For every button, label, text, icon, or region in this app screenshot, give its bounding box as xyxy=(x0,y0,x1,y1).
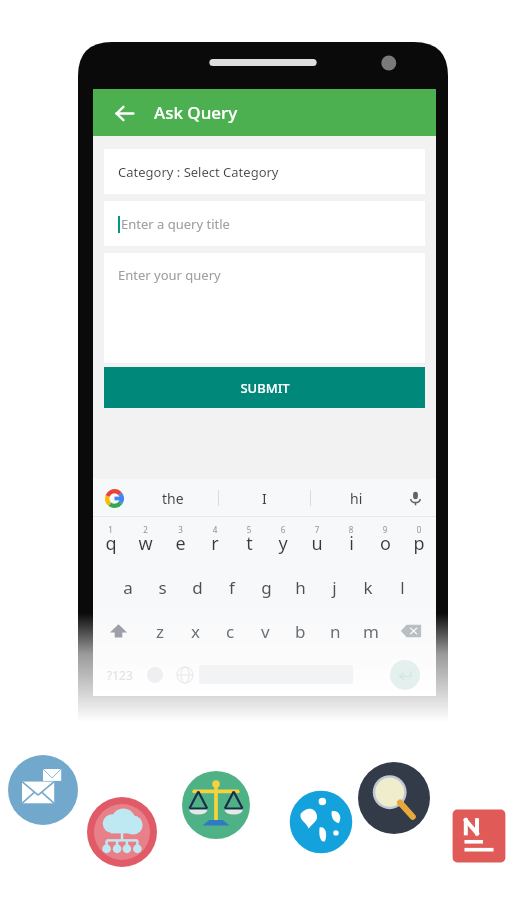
staticText: d xyxy=(192,576,203,599)
staticText: the xyxy=(162,489,184,508)
staticText: o xyxy=(380,531,391,556)
staticText: 7 xyxy=(300,524,334,535)
staticText: l xyxy=(400,576,405,599)
button[interactable]: 9 xyxy=(368,521,402,565)
button[interactable]: Enter your query xyxy=(104,253,425,363)
staticText: k xyxy=(363,576,373,599)
button[interactable]: the xyxy=(127,479,218,517)
button[interactable]: Enter a query title xyxy=(104,201,425,246)
staticText: 1 xyxy=(93,524,128,535)
button[interactable]: 2 xyxy=(128,521,163,565)
staticText: 0 xyxy=(402,524,436,535)
button[interactable]: n xyxy=(318,609,353,653)
staticText: a xyxy=(123,576,133,599)
button[interactable]: k xyxy=(351,565,385,609)
button[interactable]: m xyxy=(353,609,388,653)
staticText: 3 xyxy=(163,524,198,535)
staticText: j xyxy=(332,576,337,599)
button[interactable]: Language xyxy=(170,653,199,696)
button[interactable]: s xyxy=(145,565,180,609)
staticText: n xyxy=(330,620,341,643)
staticText: ?123 xyxy=(107,667,133,683)
button[interactable]: b xyxy=(283,609,318,653)
staticText: g xyxy=(261,576,272,599)
button[interactable]: SUBMIT xyxy=(104,367,425,408)
button[interactable]: 6 xyxy=(266,521,300,565)
staticText: I xyxy=(262,489,267,508)
button[interactable]: g xyxy=(249,565,283,609)
staticText: s xyxy=(158,576,167,599)
staticText: c xyxy=(226,620,235,643)
staticText: b xyxy=(295,620,306,643)
staticText: z xyxy=(156,620,164,643)
staticText: 9 xyxy=(368,524,402,535)
button[interactable]: Enter xyxy=(379,653,430,696)
button[interactable]: z xyxy=(142,609,178,653)
button[interactable]: f xyxy=(215,565,249,609)
staticText: q xyxy=(105,531,117,556)
staticText: Enter a query title xyxy=(121,215,230,233)
staticText: 2 xyxy=(128,524,163,535)
button[interactable]: 7 xyxy=(300,521,334,565)
staticText: u xyxy=(311,531,323,556)
staticText: w xyxy=(138,531,153,556)
staticText: y xyxy=(278,531,288,556)
button[interactable]: a xyxy=(110,565,145,609)
staticText: p xyxy=(413,531,425,556)
button[interactable]: 0 xyxy=(402,521,436,565)
button[interactable]: Emoji xyxy=(140,653,170,696)
button[interactable]: 4 xyxy=(198,521,232,565)
button[interactable]: Backspace xyxy=(388,609,434,653)
button[interactable]: c xyxy=(213,609,248,653)
staticText: Enter your query xyxy=(118,266,221,284)
button[interactable]: Cloud xyxy=(87,797,157,867)
staticText: 6 xyxy=(266,524,300,535)
button[interactable]: x xyxy=(178,609,213,653)
staticText: Ask Query xyxy=(154,101,238,124)
button[interactable]: Search xyxy=(358,762,430,834)
button[interactable]: hi xyxy=(311,479,402,517)
button[interactable]: j xyxy=(317,565,351,609)
button[interactable]: I xyxy=(219,479,310,517)
button[interactable]: Category : Select Category xyxy=(104,149,425,194)
staticText: m xyxy=(363,620,379,643)
button[interactable]: v xyxy=(248,609,283,653)
staticText: x xyxy=(191,620,200,643)
staticText: e xyxy=(175,531,186,556)
staticText: f xyxy=(229,576,235,599)
staticText: r xyxy=(211,531,219,556)
button[interactable]: Google xyxy=(101,485,127,511)
button[interactable]: 5 xyxy=(232,521,266,565)
staticText: SUBMIT xyxy=(240,379,290,397)
button[interactable]: Shift xyxy=(95,609,142,653)
button[interactable]: ?123 xyxy=(99,653,140,696)
button[interactable]: 3 xyxy=(163,521,198,565)
staticText: t xyxy=(246,531,253,556)
button[interactable]: Justice xyxy=(182,771,250,839)
staticText: i xyxy=(349,531,354,556)
button[interactable]: 8 xyxy=(334,521,368,565)
button[interactable]: Globe xyxy=(287,788,355,856)
button[interactable]: Back xyxy=(107,96,141,130)
staticText: hi xyxy=(350,489,363,508)
button[interactable]: 1 xyxy=(93,521,128,565)
button[interactable]: News xyxy=(446,803,512,869)
button[interactable]: Voice input xyxy=(402,485,428,511)
staticText: 8 xyxy=(334,524,368,535)
button[interactable]: h xyxy=(283,565,317,609)
staticText: h xyxy=(295,576,306,599)
staticText: 5 xyxy=(232,524,266,535)
staticText: 4 xyxy=(198,524,232,535)
staticText: Category : Select Category xyxy=(118,163,279,181)
button[interactable]: Mail xyxy=(8,755,78,825)
staticText: v xyxy=(261,620,270,643)
button[interactable]: l xyxy=(385,565,419,609)
button[interactable]: d xyxy=(180,565,215,609)
